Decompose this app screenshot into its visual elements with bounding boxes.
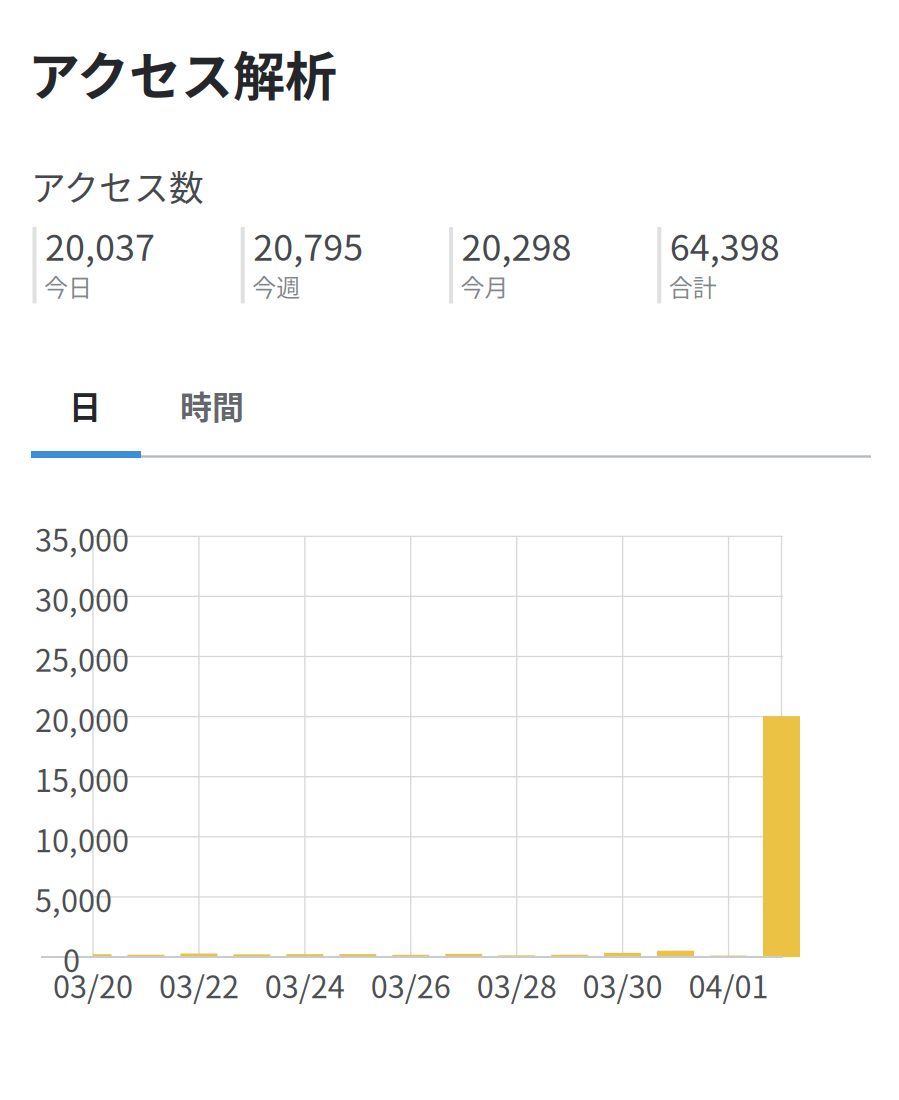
staticText: 今月 <box>460 269 508 303</box>
staticText: 20,795 <box>253 219 363 271</box>
button[interactable]: 64,398 <box>658 225 866 315</box>
staticText: 04/01 <box>688 963 768 1007</box>
staticText: 10,000 <box>35 817 129 861</box>
staticText: 25,000 <box>35 636 129 681</box>
staticText: 03/26 <box>371 963 451 1007</box>
staticText: 日 <box>69 382 101 428</box>
staticText: 03/20 <box>53 963 133 1007</box>
button[interactable]: 20,298 <box>449 225 657 315</box>
staticText: 03/24 <box>265 963 345 1007</box>
staticText: 03/28 <box>477 963 557 1007</box>
staticText: 15,000 <box>35 756 129 801</box>
button[interactable]: 20,795 <box>241 225 449 315</box>
staticText: アクセス解析 <box>28 35 337 111</box>
staticText: アクセス数 <box>31 161 204 211</box>
staticText: 20,037 <box>45 219 155 271</box>
staticText: 今週 <box>252 269 300 303</box>
staticText: 20,000 <box>35 696 129 741</box>
staticText: 合計 <box>669 269 717 303</box>
staticText: 35,000 <box>35 516 129 560</box>
staticText: 64,398 <box>670 219 780 271</box>
button[interactable]: 日 <box>30 370 140 440</box>
staticText: 5,000 <box>35 877 112 921</box>
staticText: 時間 <box>180 382 244 428</box>
staticText: 0 <box>63 937 80 981</box>
staticText: 03/22 <box>159 963 239 1007</box>
staticText: 03/30 <box>583 963 663 1007</box>
staticText: 今日 <box>44 269 92 303</box>
staticText: 20,298 <box>461 219 571 271</box>
button[interactable]: 時間 <box>157 370 267 440</box>
staticText: 30,000 <box>35 576 129 621</box>
button[interactable]: 20,037 <box>33 225 241 315</box>
